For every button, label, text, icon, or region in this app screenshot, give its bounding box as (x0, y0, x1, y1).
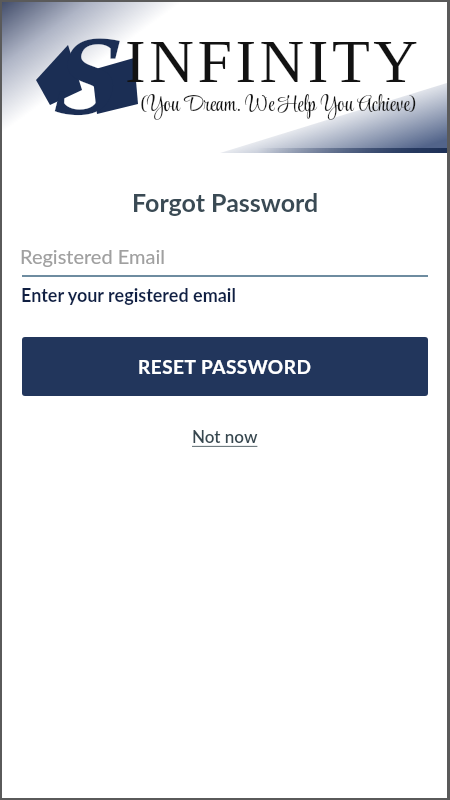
staticText: (You Dream. We Help You Achieve) (140, 88, 416, 122)
staticText: Not now (192, 426, 258, 446)
staticText: INFINITY (125, 27, 422, 96)
staticText: S (48, 12, 112, 138)
button[interactable]: RESET PASSWORD (22, 337, 428, 396)
staticText: Registered Email (20, 244, 165, 268)
staticText: RESET PASSWORD (138, 355, 312, 378)
staticText: Forgot Password (132, 187, 319, 217)
staticText: Enter your registered email (21, 284, 236, 306)
button[interactable]: Not now (186, 424, 264, 448)
